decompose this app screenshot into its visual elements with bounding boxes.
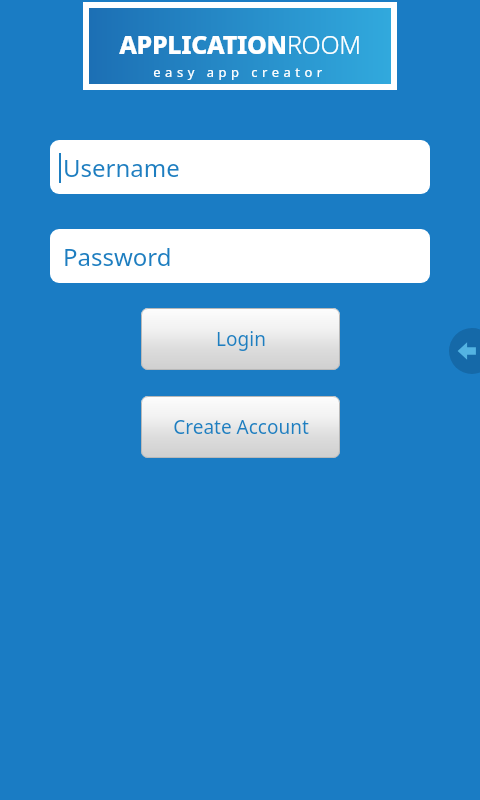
staticText: Login (216, 326, 266, 352)
staticText: Create Account (173, 414, 309, 440)
button[interactable]: Login (141, 308, 340, 370)
button[interactable]: Open side panel (449, 328, 480, 374)
staticText: Password (63, 240, 172, 273)
staticText: APPLICATIONROOM (119, 27, 361, 61)
button[interactable]: Username (50, 140, 430, 194)
button[interactable]: Create Account (141, 396, 340, 458)
staticText: Username (63, 151, 180, 184)
button[interactable]: Password (50, 229, 430, 283)
staticText: easy app creator (153, 63, 327, 81)
